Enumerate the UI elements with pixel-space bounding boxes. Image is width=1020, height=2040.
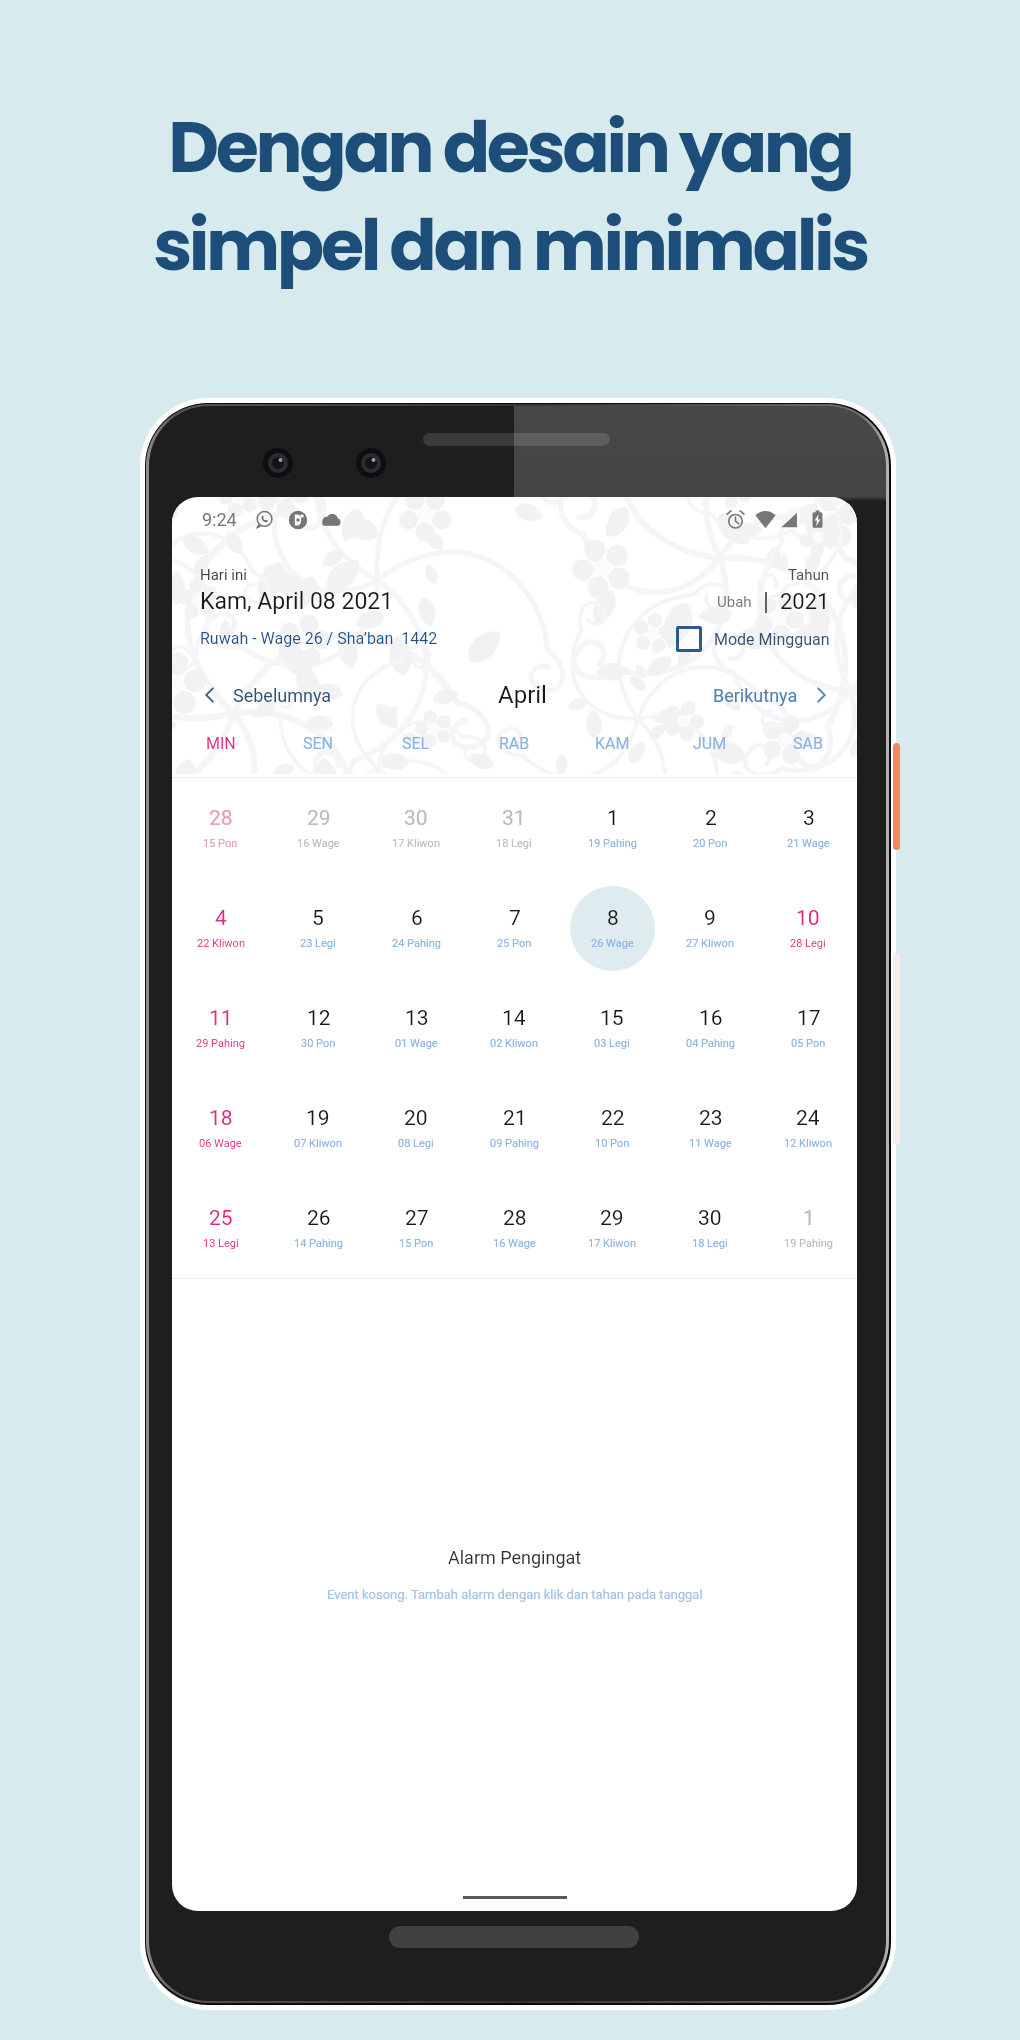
staticText: 28 Legi xyxy=(790,937,826,950)
staticText: 15 xyxy=(600,1006,624,1031)
button[interactable]: 1 xyxy=(759,1178,857,1278)
button[interactable]: 29 xyxy=(563,1178,661,1278)
staticText: 15 Pon xyxy=(399,1237,434,1250)
button[interactable]: Mode Mingguan xyxy=(676,626,830,652)
button[interactable]: 29 xyxy=(269,778,367,878)
staticText: Hari ini xyxy=(200,566,247,584)
button[interactable]: 8 xyxy=(563,878,661,978)
button[interactable]: 31 xyxy=(465,778,563,878)
button[interactable]: 22 xyxy=(563,1078,661,1178)
staticText: 11 Wage xyxy=(689,1137,732,1150)
button[interactable]: 9 xyxy=(661,878,759,978)
staticText: 06 Wage xyxy=(199,1137,242,1150)
button[interactable]: 10 xyxy=(759,878,857,978)
staticText: 29 xyxy=(600,1206,624,1231)
button[interactable]: 21 xyxy=(465,1078,563,1178)
staticText: 16 Wage xyxy=(297,837,340,850)
staticText: 01 Wage xyxy=(395,1037,438,1050)
staticText: 27 Kliwon xyxy=(686,937,734,950)
staticText: Kam, April 08 2021 xyxy=(200,588,394,615)
button[interactable]: 3 xyxy=(759,778,857,878)
staticText: Ruwah - Wage 26 / Sha’ban 1442 xyxy=(200,629,438,648)
button[interactable]: 25 xyxy=(172,1178,269,1278)
button[interactable]: Berikutnya xyxy=(713,683,833,707)
button[interactable]: 27 xyxy=(367,1178,465,1278)
staticText: Mode Mingguan xyxy=(714,630,830,649)
button[interactable]: 26 xyxy=(269,1178,367,1278)
staticText: 14 xyxy=(502,1006,526,1031)
staticText: 29 Pahing xyxy=(196,1037,245,1050)
button[interactable]: 15 xyxy=(563,978,661,1078)
staticText: April xyxy=(498,681,547,709)
button[interactable]: 2 xyxy=(661,778,759,878)
staticText: 27 xyxy=(405,1206,429,1231)
staticText: 29 xyxy=(307,806,331,831)
staticText: 09 Pahing xyxy=(490,1137,539,1150)
staticText: 3 xyxy=(803,806,815,831)
staticText: 12 Kliwon xyxy=(784,1137,832,1150)
button[interactable]: 13 xyxy=(367,978,465,1078)
button[interactable]: 12 xyxy=(269,978,367,1078)
button[interactable]: Sebelumnya xyxy=(198,683,332,707)
staticText: 20 Pon xyxy=(693,837,728,850)
button[interactable]: 18 xyxy=(172,1078,269,1178)
staticText: 16 Wage xyxy=(493,1237,536,1250)
staticText: JUM xyxy=(693,734,727,753)
staticText: 17 Kliwon xyxy=(392,837,440,850)
staticText: 13 Legi xyxy=(203,1237,239,1250)
staticText: 14 Pahing xyxy=(294,1237,343,1250)
staticText: 2021 xyxy=(780,589,830,615)
staticText: 25 xyxy=(209,1206,233,1231)
staticText: Dengan desain yang xyxy=(168,98,852,196)
staticText: 20 xyxy=(404,1106,428,1131)
button[interactable]: Ubah xyxy=(717,593,752,611)
staticText: 23 Legi xyxy=(300,937,336,950)
button[interactable]: 5 xyxy=(269,878,367,978)
button[interactable]: 28 xyxy=(465,1178,563,1278)
staticText: Tahun xyxy=(788,566,830,584)
staticText: SEL xyxy=(402,734,430,753)
staticText: 30 Pon xyxy=(301,1037,336,1050)
staticText: 30 xyxy=(404,806,428,831)
button[interactable]: 30 xyxy=(661,1178,759,1278)
staticText: 30 xyxy=(698,1206,722,1231)
staticText: 26 Wage xyxy=(591,937,634,950)
staticText: 11 xyxy=(209,1006,233,1031)
button[interactable]: 6 xyxy=(367,878,465,978)
staticText: 04 Pahing xyxy=(686,1037,735,1050)
button[interactable]: 11 xyxy=(172,978,269,1078)
staticText: 4 xyxy=(215,906,227,931)
staticText: KAM xyxy=(595,734,630,753)
staticText: 6 xyxy=(411,906,423,931)
staticText: 25 Pon xyxy=(497,937,532,950)
button[interactable]: 24 xyxy=(759,1078,857,1178)
staticText: RAB xyxy=(499,734,530,753)
staticText: 03 Legi xyxy=(594,1037,630,1050)
button[interactable]: 17 xyxy=(759,978,857,1078)
staticText: 7 xyxy=(509,906,521,931)
button[interactable]: 28 xyxy=(172,778,269,878)
staticText: 28 xyxy=(503,1206,527,1231)
button[interactable]: 4 xyxy=(172,878,269,978)
staticText: Alarm Pengingat xyxy=(448,1547,582,1568)
staticText: 18 Legi xyxy=(496,837,532,850)
staticText: 02 Kliwon xyxy=(490,1037,538,1050)
staticText: 21 Wage xyxy=(787,837,830,850)
staticText: Event kosong. Tambah alarm dengan klik d… xyxy=(327,1587,703,1602)
staticText: 23 xyxy=(699,1106,723,1131)
button[interactable]: 16 xyxy=(661,978,759,1078)
button[interactable]: 20 xyxy=(367,1078,465,1178)
button[interactable]: 7 xyxy=(465,878,563,978)
staticText: 8 xyxy=(607,906,619,931)
staticText: 22 Kliwon xyxy=(197,937,245,950)
button[interactable]: 30 xyxy=(367,778,465,878)
button[interactable]: 14 xyxy=(465,978,563,1078)
staticText: 22 xyxy=(601,1106,625,1131)
staticText: 10 Pon xyxy=(595,1137,630,1150)
button[interactable]: 1 xyxy=(563,778,661,878)
staticText: SAB xyxy=(793,734,823,753)
button[interactable]: 19 xyxy=(269,1078,367,1178)
button[interactable]: 23 xyxy=(661,1078,759,1178)
staticText: Sebelumnya xyxy=(233,685,332,706)
staticText: 19 xyxy=(306,1106,330,1131)
